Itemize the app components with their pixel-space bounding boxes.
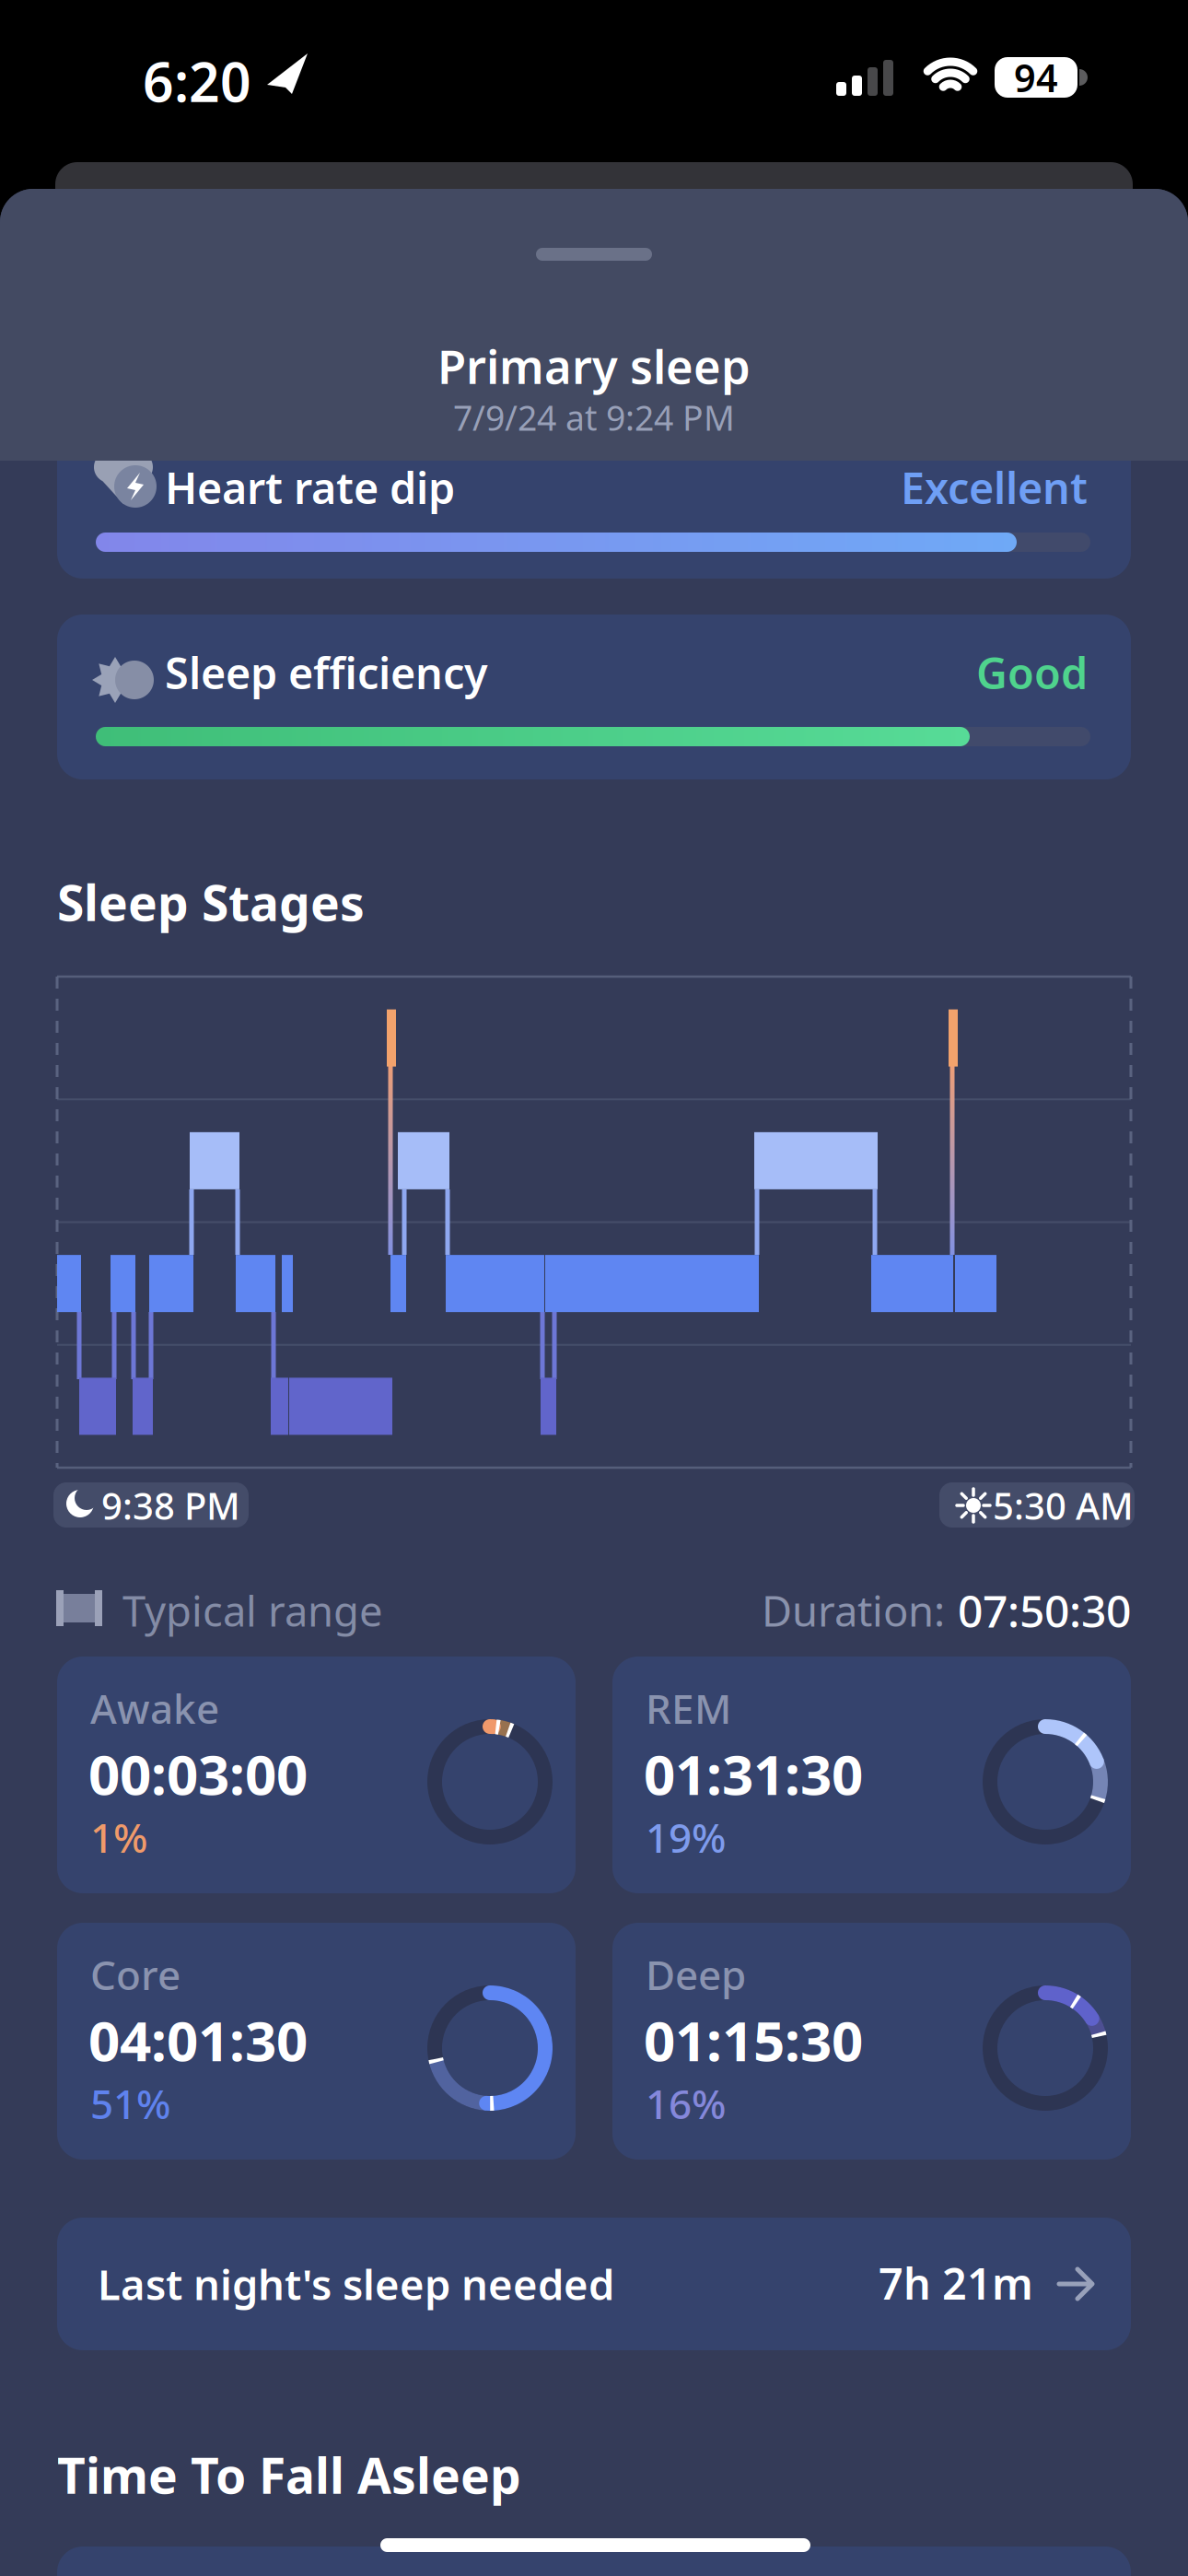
staticText: Deep bbox=[646, 1947, 746, 2001]
staticText: Sleep Stages bbox=[57, 869, 365, 935]
staticText: Good bbox=[976, 644, 1088, 701]
staticText: Sleep efficiency bbox=[165, 644, 488, 701]
staticText: 7h 21m bbox=[879, 2254, 1033, 2312]
staticText: Typical range bbox=[122, 1583, 383, 1638]
staticText: 7/9/24 at 9:24 PM bbox=[453, 395, 735, 440]
staticText: 07:50:30 bbox=[958, 1581, 1131, 1640]
staticText: Last night's sleep needed bbox=[98, 2256, 614, 2312]
button[interactable]: Last night's sleep needed bbox=[57, 2218, 1131, 2350]
staticText: 51% bbox=[90, 2076, 170, 2130]
staticText: 16% bbox=[646, 2076, 726, 2130]
staticText: Primary sleep bbox=[437, 335, 751, 397]
staticText: 6:20 bbox=[143, 45, 251, 117]
staticText: 9:38 PM bbox=[101, 1481, 240, 1530]
staticText: 94 bbox=[1014, 52, 1058, 103]
staticText: 19% bbox=[646, 1810, 726, 1864]
staticText: Heart rate dip bbox=[165, 459, 455, 516]
staticText: 01:31:30 bbox=[644, 1737, 863, 1810]
staticText: 01:15:30 bbox=[644, 2003, 863, 2077]
staticText: Duration: bbox=[762, 1583, 945, 1638]
staticText: Core bbox=[90, 1947, 181, 2001]
button[interactable]: Sleep efficiency bbox=[57, 615, 1131, 779]
staticText: REM bbox=[646, 1681, 731, 1735]
staticText: Excellent bbox=[901, 459, 1088, 516]
staticText: Awake bbox=[90, 1681, 219, 1735]
staticText: Time To Fall Asleep bbox=[57, 2442, 521, 2507]
button[interactable]: Heart rate dip bbox=[57, 414, 1131, 579]
staticText: 5:30 AM bbox=[993, 1481, 1134, 1530]
staticText: 00:03:00 bbox=[88, 1737, 308, 1810]
staticText: 1% bbox=[90, 1810, 147, 1864]
staticText: 04:01:30 bbox=[88, 2003, 308, 2077]
